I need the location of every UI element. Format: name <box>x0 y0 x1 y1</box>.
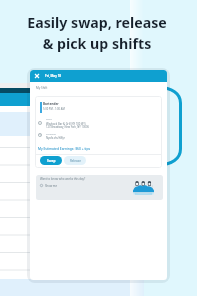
staticText: Want to know who works this day? <box>40 177 86 181</box>
staticText: Store <box>46 118 52 121</box>
button[interactable]: Release <box>64 156 86 165</box>
staticText: Swap <box>47 159 56 163</box>
button[interactable]: Close <box>32 71 41 80</box>
button[interactable]: Swap <box>40 156 62 165</box>
staticText: Fri, May 18 <box>45 74 62 78</box>
staticText: 5:00 PM - 1:00 AM <box>43 107 65 111</box>
staticText: Schedule <box>46 133 56 136</box>
staticText: Nyafx.shs/hl8yr <box>46 136 65 140</box>
staticText: Wayback Bar & Grill NY 100 W 5 <box>46 122 86 126</box>
staticText: Bartender <box>43 102 59 106</box>
staticText: Easily swap, release & pick up shifts <box>27 13 167 53</box>
staticText: Show me <box>45 184 58 188</box>
staticText: My Shift <box>36 86 48 90</box>
staticText: My Estimated Earnings: $60 + tips <box>38 146 91 150</box>
staticText: Release <box>70 159 81 163</box>
staticText: 123 Broadway, New York, NY 10006 <box>46 125 89 129</box>
button[interactable]: Want to know who works this day? <box>36 175 163 200</box>
